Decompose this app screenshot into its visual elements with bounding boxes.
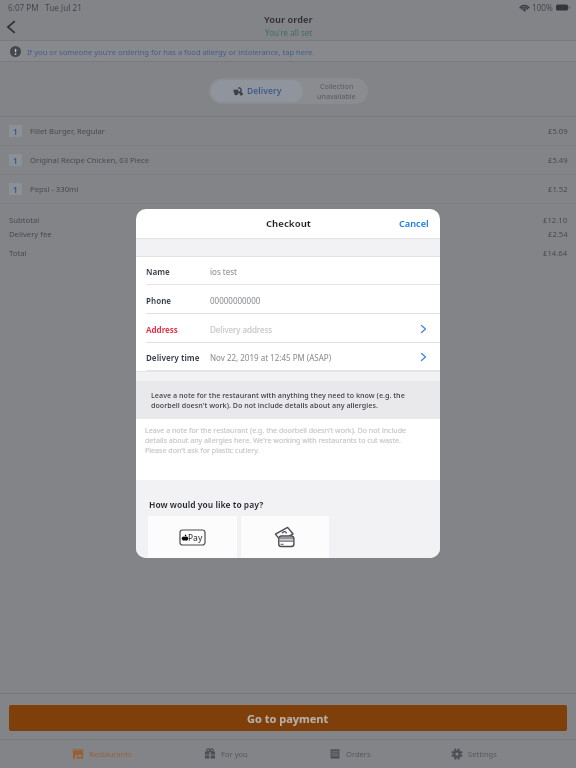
button[interactable]: If you or someone you're ordering for ha… (0, 46, 576, 57)
staticText: 100% (532, 2, 553, 13)
button[interactable]: Cancel (388, 209, 440, 238)
staticText: ios test (210, 266, 237, 277)
staticText: Address (146, 324, 178, 335)
staticText: Tue Jul 21 (45, 2, 82, 13)
button[interactable]: 1 (0, 117, 576, 145)
button[interactable]: Pay by card (241, 516, 329, 558)
button[interactable]: 1 (0, 175, 576, 203)
staticText: £14.64 (543, 248, 568, 258)
button[interactable]: Back (0, 16, 22, 38)
staticText: £5.09 (548, 126, 568, 136)
staticText: For you (221, 749, 248, 759)
staticText: 6:07 PM (8, 2, 39, 13)
staticText: Leave a note for the restaurant with any… (151, 390, 422, 410)
button[interactable]: Settings (412, 740, 536, 768)
button[interactable]: Phone (136, 286, 440, 314)
staticText: Fillet Burger, Regular (30, 126, 106, 136)
staticText: Pay (188, 532, 203, 543)
staticText: £12.10 (543, 215, 568, 225)
staticText: Checkout (266, 217, 311, 230)
button[interactable]: Restaurants (40, 740, 164, 768)
button[interactable]: Collection (305, 78, 368, 104)
staticText: Original Recipe Chicken, 03 Piece (30, 155, 150, 165)
staticText: £1.52 (548, 184, 568, 194)
staticText: £5.49 (548, 155, 568, 165)
staticText: 1 (13, 155, 18, 166)
staticText: Nov 22, 2019 at 12:45 PM (ASAP) (210, 352, 332, 363)
button[interactable]: Pay with Apple Pay (148, 516, 237, 558)
staticText: Settings (468, 749, 497, 759)
staticText: If you or someone you're ordering for ha… (27, 47, 315, 57)
button[interactable]: Address (136, 315, 440, 343)
staticText: You're all set (265, 27, 313, 38)
staticText: unavailable (317, 91, 356, 101)
staticText: Leave a note for the restaurant (e.g. th… (145, 425, 407, 455)
staticText: 1 (13, 126, 18, 137)
staticText: Phone (146, 295, 172, 306)
staticText: Pepsi - 330ml (30, 184, 79, 194)
button[interactable]: Go to payment (9, 705, 567, 731)
staticText: Your order (264, 13, 313, 26)
staticText: Delivery (247, 85, 282, 97)
staticText: Cancel (399, 217, 429, 230)
button[interactable]: Delivery (211, 80, 303, 102)
staticText: How would you like to pay? (149, 499, 264, 510)
staticText: Total (9, 248, 27, 258)
staticText: Delivery fee (9, 229, 52, 239)
staticText: Orders (346, 749, 371, 759)
button[interactable]: Orders (288, 740, 412, 768)
staticText: Restaurants (89, 749, 132, 759)
staticText: Delivery address (210, 324, 273, 335)
staticText: 1 (13, 184, 18, 195)
button[interactable]: Name (136, 257, 440, 285)
staticText: £2.54 (548, 229, 568, 239)
staticText: Name (146, 266, 170, 277)
staticText: Go to payment (247, 711, 329, 726)
staticText: 00000000000 (210, 295, 261, 306)
staticText: Collection (320, 81, 354, 91)
staticText: Subtotal (9, 215, 40, 225)
button[interactable]: For you (164, 740, 288, 768)
button[interactable]: 1 (0, 146, 576, 174)
button[interactable]: Delivery time (136, 343, 440, 371)
staticText: Delivery time (146, 352, 200, 363)
